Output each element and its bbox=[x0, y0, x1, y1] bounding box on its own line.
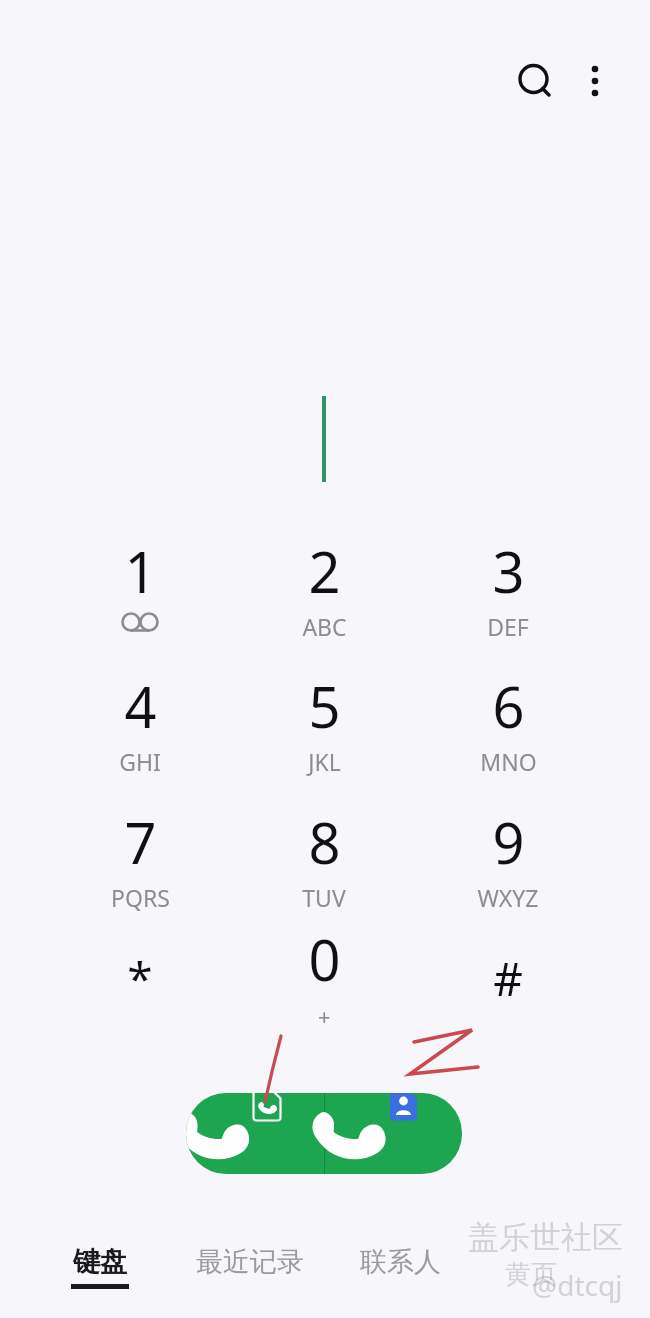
staticText: 2 bbox=[308, 533, 341, 609]
button[interactable]: 8 bbox=[249, 796, 399, 916]
staticText: WXYZ bbox=[477, 882, 539, 913]
button[interactable]: 6 bbox=[433, 660, 583, 780]
button[interactable]: 0 bbox=[249, 913, 399, 1033]
staticText: 6 bbox=[492, 668, 525, 744]
staticText: # bbox=[493, 947, 523, 1010]
button[interactable]: Call with SIM 1 bbox=[186, 1093, 324, 1174]
staticText: 黄页 bbox=[505, 1258, 557, 1291]
button[interactable]: More options bbox=[570, 56, 620, 106]
staticText: ABC bbox=[302, 611, 347, 642]
staticText: 5 bbox=[308, 668, 341, 744]
button[interactable]: 7 bbox=[65, 796, 215, 916]
button[interactable]: 2 bbox=[249, 525, 399, 645]
staticText: 3 bbox=[492, 533, 525, 609]
staticText: + bbox=[318, 1001, 331, 1031]
button[interactable]: 键盘 bbox=[25, 1245, 175, 1307]
button[interactable]: 5 bbox=[249, 660, 399, 780]
button[interactable]: Search bbox=[509, 56, 561, 108]
staticText: 键盘 bbox=[73, 1245, 127, 1279]
button[interactable]: 1 bbox=[65, 525, 215, 645]
staticText: 4 bbox=[124, 668, 157, 744]
staticText: 最近记录 bbox=[196, 1245, 304, 1279]
button[interactable]: 联系人 bbox=[325, 1245, 475, 1307]
staticText: PQRS bbox=[111, 882, 170, 913]
button[interactable]: * bbox=[65, 913, 215, 1033]
staticText: MNO bbox=[480, 746, 537, 777]
staticText: 1 bbox=[124, 533, 157, 609]
staticText: 联系人 bbox=[360, 1245, 441, 1279]
staticText: 9 bbox=[492, 804, 525, 880]
staticText: JKL bbox=[308, 746, 341, 777]
staticText: 7 bbox=[124, 804, 157, 880]
button[interactable]: 最近记录 bbox=[175, 1245, 325, 1307]
staticText: @dtcqj bbox=[532, 1266, 623, 1304]
staticText: 0 bbox=[308, 921, 341, 997]
staticText: DEF bbox=[487, 611, 529, 642]
staticText: TUV bbox=[302, 882, 346, 913]
staticText: 盖乐世社区 bbox=[468, 1218, 623, 1257]
button[interactable]: 3 bbox=[433, 525, 583, 645]
button[interactable]: 4 bbox=[65, 660, 215, 780]
button[interactable]: # bbox=[433, 913, 583, 1033]
staticText: GHI bbox=[119, 746, 161, 777]
staticText: * bbox=[127, 947, 153, 1010]
button[interactable]: 9 bbox=[433, 796, 583, 916]
staticText: 8 bbox=[308, 804, 341, 880]
button[interactable]: Call with SIM 2 bbox=[325, 1093, 462, 1174]
